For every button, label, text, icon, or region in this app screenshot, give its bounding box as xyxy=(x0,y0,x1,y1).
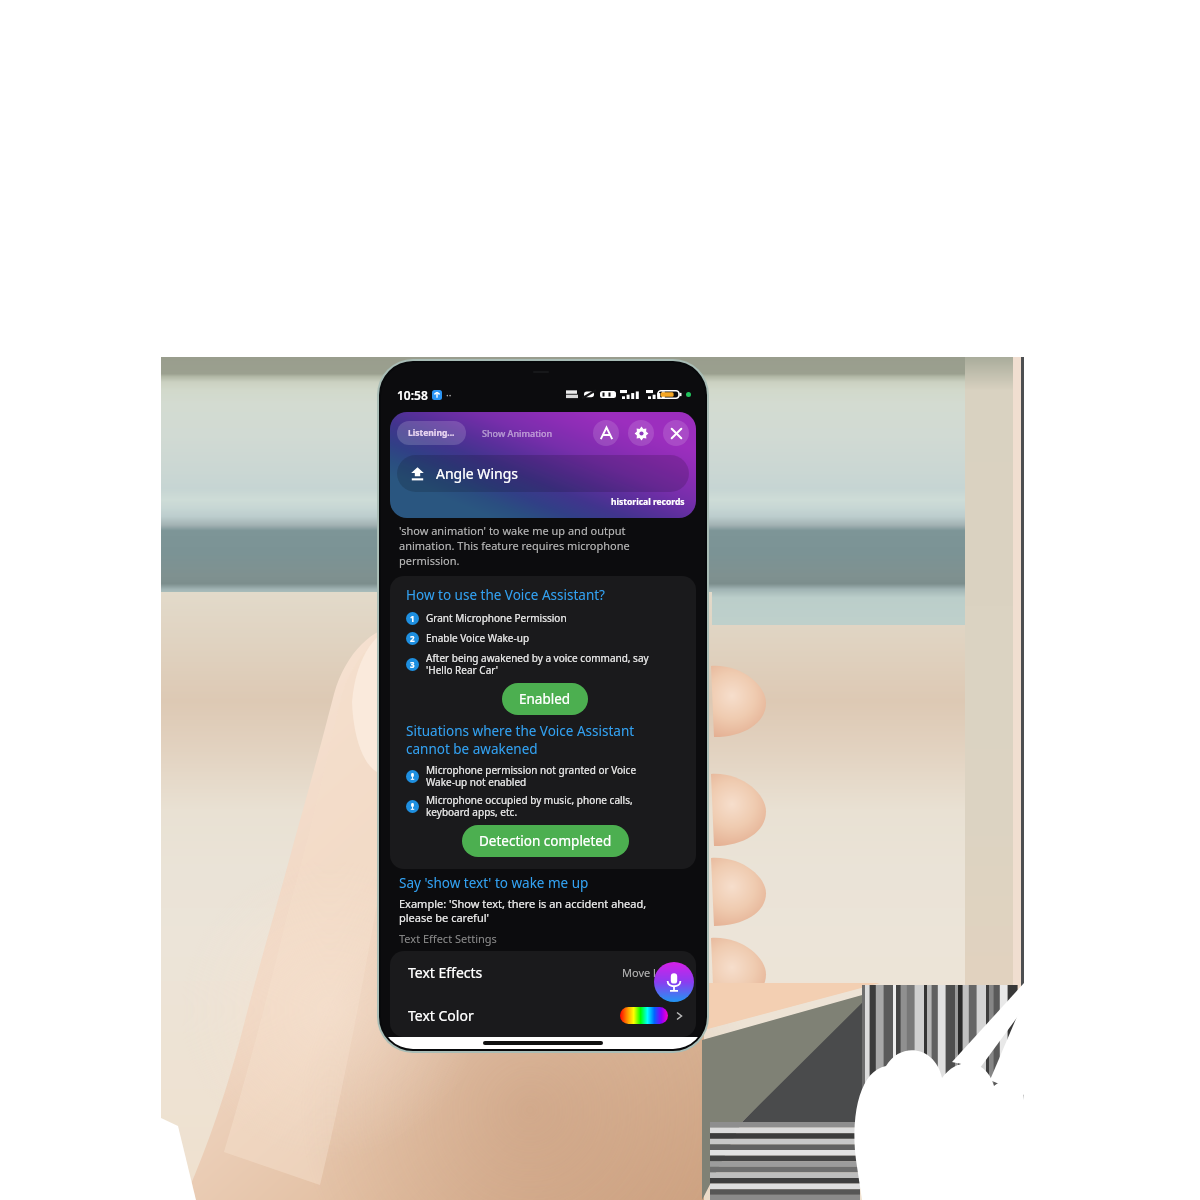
button[interactable]: Listening... xyxy=(397,421,466,445)
button[interactable]: Angle Wings xyxy=(397,455,689,492)
button[interactable]: Show Animation xyxy=(472,421,563,445)
staticText: Text Color xyxy=(408,1006,474,1025)
staticText: 2 xyxy=(410,633,415,644)
staticText: Move left xyxy=(622,965,670,980)
button[interactable]: Voice input xyxy=(654,962,694,1002)
staticText: Angle Wings xyxy=(436,464,518,483)
staticText: Microphone occupied by music, phone call… xyxy=(426,793,633,819)
staticText: Detection completed xyxy=(479,832,612,850)
staticText: Grant Microphone Permission xyxy=(426,611,567,625)
staticText: 1 xyxy=(410,613,415,624)
staticText: Microphone permission not granted or Voi… xyxy=(426,763,637,789)
button[interactable]: Enabled xyxy=(502,683,588,715)
staticText: After being awakened by a voice command,… xyxy=(426,651,649,677)
staticText: 3 xyxy=(410,659,415,670)
button[interactable]: Settings xyxy=(628,420,654,446)
staticText: Text Effect Settings xyxy=(399,931,497,946)
staticText: Say 'show text' to wake me up xyxy=(399,874,589,892)
staticText: historical records xyxy=(611,496,685,508)
button[interactable]: Detection completed xyxy=(462,825,629,857)
staticText: Enable Voice Wake-up xyxy=(426,631,530,645)
staticText: 10:58 xyxy=(397,387,428,403)
staticText: 'show animation' to wake me up and outpu… xyxy=(399,523,630,568)
staticText: Text Effects xyxy=(408,963,483,982)
button[interactable]: historical records xyxy=(607,494,689,510)
staticText: ·· xyxy=(446,388,452,402)
staticText: Show Animation xyxy=(482,427,553,439)
button[interactable]: Text Effects xyxy=(390,951,696,994)
button[interactable]: Font xyxy=(593,420,619,446)
button[interactable]: Close xyxy=(663,420,689,446)
staticText: Listening... xyxy=(408,427,455,439)
staticText: Situations where the Voice Assistant can… xyxy=(406,722,635,758)
staticText: Example: 'Show text, there is an acciden… xyxy=(399,896,647,926)
staticText: How to use the Voice Assistant? xyxy=(406,586,605,604)
staticText: Enabled xyxy=(519,690,571,708)
button[interactable]: Text Color xyxy=(390,994,696,1037)
